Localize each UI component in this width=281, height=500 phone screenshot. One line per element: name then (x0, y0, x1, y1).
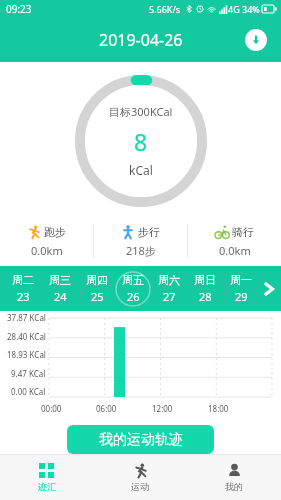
staticText: 我的运动轨迹 (99, 431, 183, 449)
staticText: 周五 (122, 273, 144, 287)
staticText: 218步 (126, 243, 156, 258)
staticText: 目标300KCal (109, 104, 173, 119)
staticText: kCal (129, 162, 153, 178)
staticText: 周四 (86, 273, 108, 287)
button[interactable]: 周三 (41, 266, 78, 311)
staticText: 0.00 KCal (11, 386, 46, 397)
button[interactable]: Download (245, 29, 267, 51)
staticText: 34% (242, 3, 260, 15)
button[interactable]: 周五 (115, 266, 151, 311)
staticText: 迹汇 (38, 481, 56, 492)
staticText: 27 (163, 289, 176, 304)
button[interactable]: 步行 (94, 216, 187, 266)
staticText: 12:00 (152, 403, 173, 414)
staticText: 周日 (194, 273, 216, 287)
button[interactable]: 迹汇 (0, 455, 93, 500)
staticText: 周二 (12, 273, 34, 287)
button[interactable]: 周二 (4, 266, 41, 311)
staticText: 18:00 (208, 403, 229, 414)
staticText: 28.40 KCal (7, 331, 46, 342)
staticText: 周三 (49, 273, 71, 287)
staticText: 00:00 (41, 403, 62, 414)
button[interactable]: 周六 (151, 266, 187, 311)
button[interactable]: 周一 (223, 266, 259, 311)
staticText: 23 (17, 289, 30, 304)
staticText: 0.0km (219, 243, 251, 258)
staticText: 8 (134, 126, 148, 157)
staticText: 骑行 (232, 225, 254, 239)
staticText: 28 (199, 289, 212, 304)
staticText: 9.47 KCal (11, 368, 46, 379)
button[interactable]: 我的 (187, 455, 281, 500)
button[interactable]: 我的运动轨迹 (67, 425, 214, 454)
staticText: 我的 (225, 481, 243, 492)
staticText: 周一 (230, 273, 252, 287)
button[interactable]: 跑步 (0, 216, 93, 266)
staticText: 周六 (158, 273, 180, 287)
button[interactable]: 骑行 (188, 216, 281, 266)
button[interactable]: 周四 (78, 266, 115, 311)
staticText: 29 (235, 289, 248, 304)
staticText: 4G (228, 3, 240, 15)
staticText: 跑步 (44, 225, 66, 239)
button[interactable]: 运动 (93, 455, 187, 500)
button[interactable]: Next week (257, 266, 281, 311)
staticText: 运动 (131, 481, 149, 492)
staticText: 步行 (138, 225, 160, 239)
staticText: 26 (127, 289, 140, 304)
staticText: 37.87 KCal (7, 312, 46, 323)
staticText: 0.0km (31, 243, 63, 258)
staticText: 25 (91, 289, 104, 304)
staticText: 5.66K/s (149, 3, 181, 15)
staticText: 24 (54, 289, 67, 304)
staticText: 2019-04-26 (99, 29, 183, 51)
staticText: 18.93 KCal (7, 349, 46, 360)
staticText: 09:23 (6, 2, 32, 16)
staticText: 06:00 (96, 403, 117, 414)
button[interactable]: 周日 (187, 266, 223, 311)
